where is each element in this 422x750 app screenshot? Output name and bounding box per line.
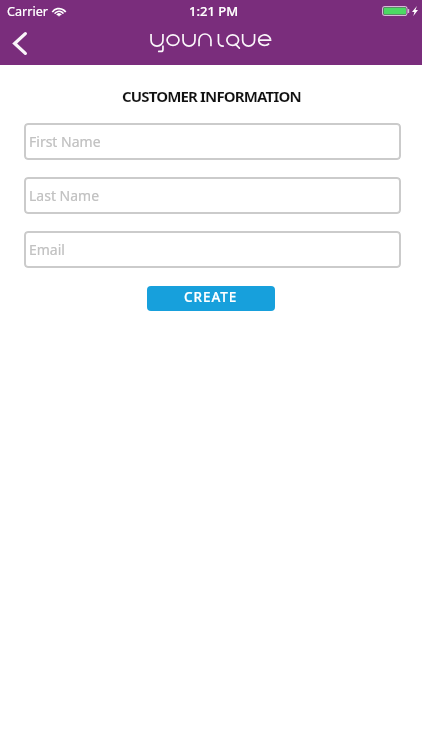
button[interactable]: First Name: [24, 123, 401, 160]
button[interactable]: Last Name: [24, 177, 401, 214]
staticText: Last Name: [29, 186, 100, 205]
staticText: CUSTOMER INFORMATION: [122, 86, 301, 106]
button[interactable]: Email: [24, 231, 401, 268]
button[interactable]: CREATE: [147, 286, 275, 311]
staticText: 1:21 PM: [189, 2, 239, 20]
staticText: Email: [29, 240, 65, 259]
staticText: Carrier: [7, 3, 48, 20]
staticText: First Name: [29, 132, 101, 151]
staticText: CREATE: [184, 288, 238, 306]
button[interactable]: Back: [0, 22, 40, 65]
